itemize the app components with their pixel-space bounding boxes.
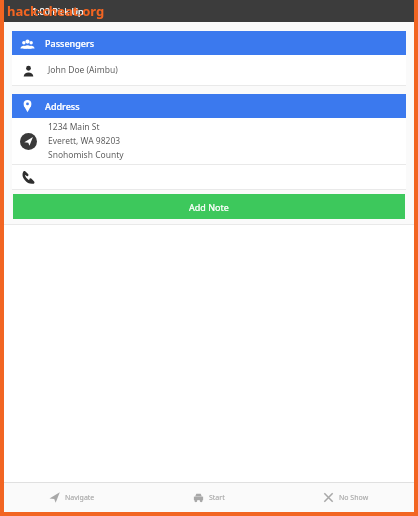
button[interactable]: Call: [12, 165, 406, 190]
staticText: Navigate: [65, 493, 95, 503]
staticText: Start: [209, 493, 225, 503]
staticText: hack-cheat.org: [7, 2, 105, 20]
staticText: Address: [45, 100, 80, 112]
button[interactable]: Navigate: [4, 483, 140, 512]
staticText: Add Note: [189, 201, 229, 213]
button[interactable]: Address: [12, 94, 406, 118]
button[interactable]: John Doe (Aimbu): [12, 55, 406, 86]
button[interactable]: Start: [140, 483, 277, 512]
button[interactable]: Add Note: [13, 194, 405, 219]
staticText: 1:00 Pick Up: [32, 5, 84, 17]
staticText: Passengers: [45, 37, 95, 49]
staticText: No Show: [339, 493, 369, 503]
staticText: John Doe (Aimbu): [48, 64, 118, 76]
staticText: Snohomish County: [48, 149, 124, 161]
button[interactable]: 1234 Main St: [12, 118, 406, 165]
button[interactable]: No Show: [277, 483, 414, 512]
staticText: 1234 Main St: [48, 121, 100, 133]
staticText: Everett, WA 98203: [48, 135, 121, 147]
button[interactable]: Passengers: [12, 31, 406, 55]
